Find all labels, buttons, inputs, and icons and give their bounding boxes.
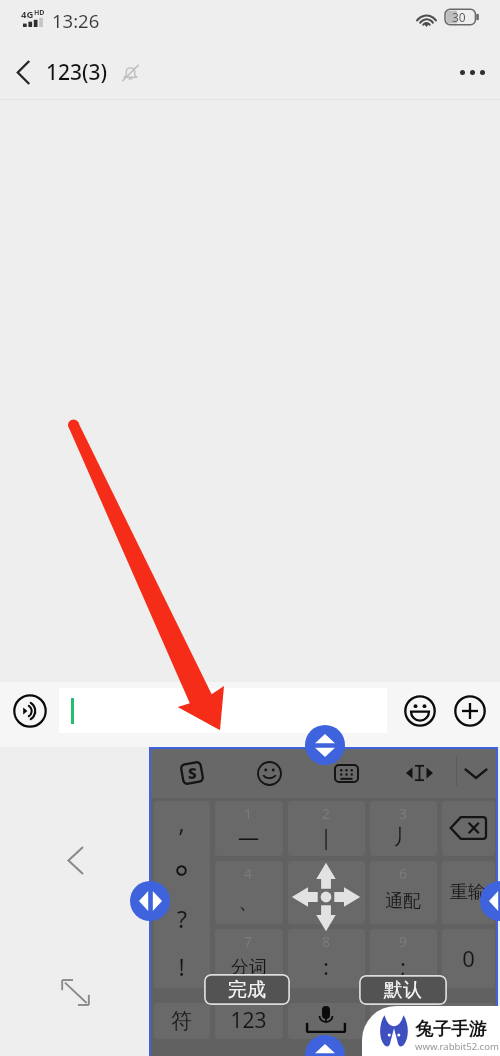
button[interactable]: 0 (439, 926, 497, 990)
button[interactable]: 7 (212, 926, 285, 990)
button[interactable]: 1 (212, 798, 285, 858)
button[interactable]: Add attachment (449, 682, 491, 740)
button[interactable]: Adjust keyboard width (130, 881, 170, 921)
button[interactable]: 2 (285, 798, 367, 858)
button[interactable]: Collapse keyboard panel (52, 836, 98, 884)
button[interactable] (59, 688, 387, 733)
button[interactable]: 123 (212, 1000, 285, 1041)
button[interactable]: Notifications muted (116, 46, 144, 99)
button[interactable]: Backspace (439, 798, 497, 858)
staticText: HD (34, 8, 45, 18)
staticText: 30 (452, 9, 466, 25)
staticText: 符 (171, 1008, 192, 1034)
button[interactable]: 9 (367, 926, 439, 990)
button[interactable]: Voice message (9, 682, 51, 740)
staticText: 2 (322, 804, 331, 823)
button[interactable]: Emoji (399, 682, 441, 740)
staticText: 3 (399, 804, 408, 823)
staticText: 重输 (450, 881, 486, 904)
staticText: 9 (399, 932, 408, 951)
button[interactable]: ! (151, 942, 212, 990)
staticText: ; (400, 953, 406, 982)
button[interactable]: 符 (151, 1000, 212, 1041)
staticText: 完成 (228, 978, 266, 1002)
staticText: 分词 (231, 956, 267, 979)
button[interactable]: 4 (212, 858, 285, 926)
staticText: 兔子手游 (415, 1018, 487, 1041)
button[interactable]: Default (359, 975, 447, 1005)
staticText: S (188, 763, 197, 783)
button[interactable]: Keyboard layout (322, 749, 370, 797)
staticText: 4G (21, 8, 34, 21)
button[interactable]: Resize keyboard (52, 970, 98, 1014)
button[interactable]: 重输 (439, 858, 497, 926)
staticText: ! (178, 951, 185, 982)
staticText: 7 (244, 932, 253, 951)
staticText: 默认 (384, 978, 422, 1002)
button[interactable]: Adjust keyboard width right (480, 881, 500, 921)
staticText: | (320, 823, 332, 852)
button[interactable]: 6 (367, 858, 439, 926)
staticText: 丿 (393, 824, 414, 850)
staticText: www.rabbit52.com (415, 1040, 499, 1053)
button[interactable]: Back (0, 46, 46, 99)
button[interactable]: Sogou input settings (168, 749, 216, 797)
button[interactable]: Adjust keyboard height (305, 725, 345, 765)
staticText: , (178, 807, 185, 838)
staticText: 4 (244, 864, 253, 883)
button[interactable]: , (151, 798, 212, 846)
button[interactable]: Full stop (151, 846, 212, 894)
button[interactable]: Cursor pad (285, 858, 367, 926)
button[interactable]: Voice input and space (285, 1000, 367, 1041)
staticText: ? (177, 903, 187, 934)
staticText: 6 (399, 864, 408, 883)
button[interactable]: ? (151, 894, 212, 942)
button[interactable]: 3 (367, 798, 439, 858)
staticText: 、 (238, 888, 259, 914)
staticText: 8 (322, 932, 331, 951)
staticText: 123 (230, 1006, 267, 1035)
button[interactable]: 8 (285, 926, 367, 990)
staticText: 通配 (385, 890, 421, 913)
button[interactable]: Hide keyboard (452, 749, 500, 797)
button[interactable]: Emoji (245, 749, 293, 797)
button[interactable]: Move cursor (395, 749, 443, 797)
button[interactable]: More options (444, 46, 500, 99)
staticText: : (323, 953, 329, 982)
staticText: 13:26 (52, 8, 100, 33)
staticText: 5 (322, 864, 331, 883)
staticText: 0 (462, 943, 475, 973)
staticText: 123(3) (46, 58, 108, 87)
staticText: — (238, 823, 259, 852)
button[interactable]: Adjust keyboard bottom (305, 1035, 345, 1056)
button[interactable]: Done (204, 974, 290, 1005)
staticText: 1 (244, 804, 253, 823)
